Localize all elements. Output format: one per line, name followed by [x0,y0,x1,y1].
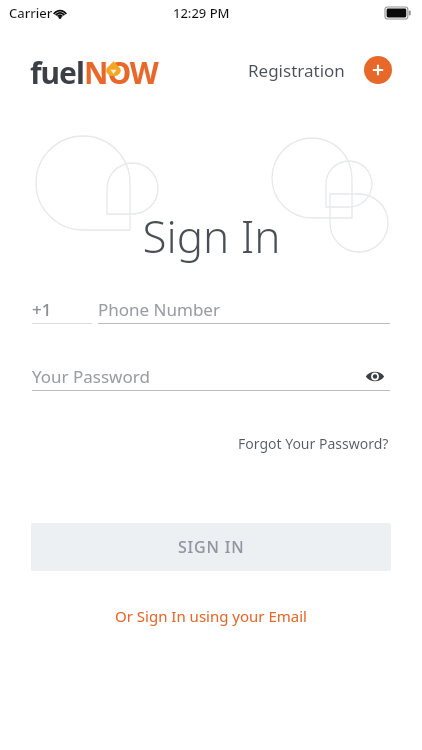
staticText: Sign In [142,206,281,266]
staticText: Phone Number [98,298,220,321]
button[interactable]: Or Sign In using your Email [109,602,313,630]
button[interactable]: Show password [360,363,390,389]
staticText: fuel [30,52,84,93]
button[interactable]: Forgot Your Password? [236,431,391,456]
staticText: NOW [84,52,158,93]
staticText: SIGN IN [178,536,245,558]
button[interactable]: Add registration [364,56,392,84]
button[interactable]: Registration [246,56,347,85]
staticText: Forgot Your Password? [238,434,389,453]
button[interactable]: SIGN IN [31,523,391,571]
staticText: 12:29 PM [173,4,230,22]
button[interactable]: Your Password [32,363,360,389]
button[interactable]: +1 [32,296,92,322]
staticText: +1 [32,298,52,321]
staticText: Carrier [9,4,53,22]
staticText: Or Sign In using your Email [115,606,307,626]
button[interactable]: Phone Number [98,296,390,322]
staticText: Registration [248,59,345,82]
staticText: Your Password [32,365,150,388]
